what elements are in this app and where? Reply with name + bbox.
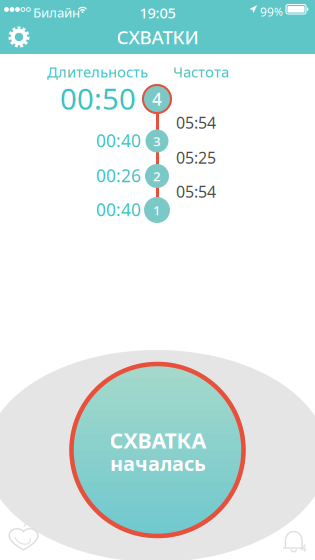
staticText: 3 xyxy=(153,132,161,150)
button[interactable]: СХВАТКА xyxy=(0,0,315,560)
button[interactable]: Reminders xyxy=(0,0,40,40)
staticText: 99 xyxy=(260,4,274,20)
staticText: Длительность xyxy=(47,62,148,81)
staticText: 4 xyxy=(300,541,306,555)
staticText: 19:05 xyxy=(139,3,175,22)
staticText: 05:25 xyxy=(176,147,216,168)
staticText: Билайн xyxy=(33,3,80,21)
staticText: 00:40 xyxy=(96,129,141,152)
staticText: 00:40 xyxy=(96,198,141,221)
staticText: 4 xyxy=(152,87,162,110)
staticText: Частота xyxy=(173,62,229,81)
button[interactable]: Settings xyxy=(0,20,40,54)
staticText: началась xyxy=(110,450,206,477)
staticText: % xyxy=(274,4,283,19)
staticText: 1 xyxy=(153,201,161,219)
staticText: 00:26 xyxy=(96,164,141,187)
staticText: СХВАТКА xyxy=(109,426,206,454)
button[interactable]: Favorites xyxy=(0,0,40,40)
staticText: 05:54 xyxy=(176,181,216,202)
staticText: 05:54 xyxy=(176,112,216,133)
staticText: СХВАТКИ xyxy=(116,25,198,49)
staticText: 00:50 xyxy=(60,79,136,118)
staticText: 2 xyxy=(153,167,161,185)
